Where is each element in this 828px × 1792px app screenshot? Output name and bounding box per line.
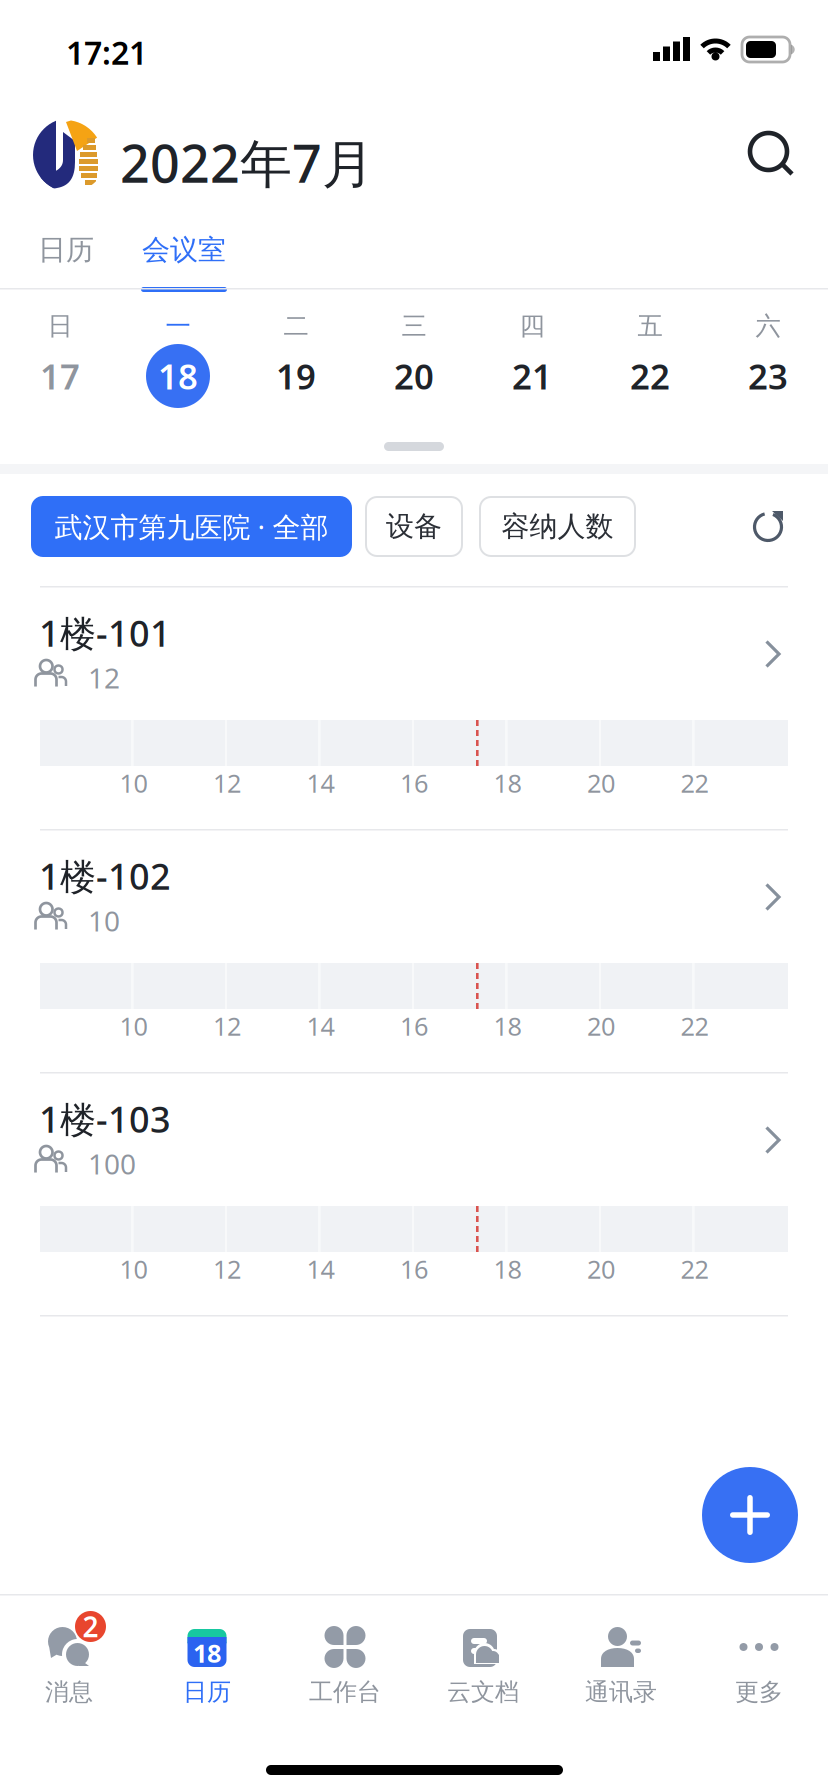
staticText: 一 [165, 310, 190, 341]
staticText: 14 [306, 766, 334, 800]
button[interactable]: 2 [0, 1596, 138, 1708]
staticText: 日历 [183, 1677, 231, 1707]
staticText: 18 [493, 1009, 521, 1043]
button[interactable]: 二 [237, 305, 355, 415]
button[interactable]: 18 [138, 1596, 276, 1708]
staticText: 12 [213, 766, 241, 800]
staticText: 2 [82, 1608, 98, 1645]
staticText: 20 [587, 766, 615, 800]
button[interactable]: 设备 [366, 497, 462, 556]
button[interactable]: 更多 [690, 1596, 828, 1708]
button[interactable]: 一 [119, 305, 237, 415]
staticText: 18 [493, 766, 521, 800]
staticText: 10 [119, 1252, 147, 1286]
staticText: 10 [88, 902, 120, 939]
staticText: 云文档 [447, 1677, 519, 1707]
button[interactable]: 通讯录 [552, 1596, 690, 1708]
staticText: 二 [283, 310, 308, 341]
staticText: 16 [400, 1009, 428, 1043]
staticText: 五 [637, 310, 662, 341]
staticText: 1楼-102 [39, 852, 171, 900]
staticText: 18 [493, 1252, 521, 1286]
staticText: 16 [400, 766, 428, 800]
button[interactable]: 会议室 [128, 230, 240, 294]
staticText: 22 [680, 1252, 708, 1286]
staticText: 工作台 [309, 1677, 381, 1707]
staticText: 22 [680, 1009, 708, 1043]
button[interactable]: 容纳人数 [480, 497, 635, 556]
staticText: 容纳人数 [501, 509, 613, 544]
button[interactable]: 五 [591, 305, 709, 415]
staticText: 23 [748, 353, 788, 399]
button[interactable]: Search [735, 120, 813, 190]
staticText: 20 [587, 1252, 615, 1286]
button[interactable]: 日历 [4, 230, 128, 294]
button[interactable]: Refresh [725, 490, 811, 562]
staticText: 10 [119, 1009, 147, 1043]
staticText: 日 [47, 310, 72, 341]
button[interactable]: Create [702, 1467, 798, 1563]
staticText: 20 [394, 353, 434, 399]
staticText: 14 [306, 1252, 334, 1286]
staticText: 2022年7月 [120, 128, 374, 197]
staticText: 12 [88, 659, 120, 696]
staticText: 19 [276, 353, 316, 399]
button[interactable]: 六 [709, 305, 827, 415]
button[interactable]: 1楼-103 [0, 1072, 828, 1315]
staticText: 18 [158, 353, 198, 399]
button[interactable]: 三 [355, 305, 473, 415]
button[interactable]: 1楼-102 [0, 829, 828, 1072]
staticText: 10 [119, 766, 147, 800]
staticText: 三 [401, 310, 426, 341]
staticText: 20 [587, 1009, 615, 1043]
staticText: 武汉市第九医院 · 全部 [54, 508, 328, 545]
staticText: 17:21 [66, 31, 147, 73]
staticText: 12 [213, 1252, 241, 1286]
button[interactable]: 四 [473, 305, 591, 415]
staticText: 更多 [735, 1677, 783, 1707]
staticText: 四 [519, 310, 544, 341]
staticText: 会议室 [142, 233, 226, 267]
staticText: 22 [630, 353, 670, 399]
staticText: 通讯录 [585, 1677, 657, 1707]
staticText: 22 [680, 766, 708, 800]
button[interactable]: 日 [1, 305, 119, 415]
staticText: 21 [512, 353, 552, 399]
staticText: 消息 [45, 1677, 93, 1707]
button[interactable]: 云文档 [414, 1596, 552, 1708]
staticText: 100 [88, 1145, 136, 1182]
staticText: 1楼-101 [39, 609, 171, 657]
button[interactable]: 1楼-101 [0, 586, 828, 829]
staticText: 设备 [386, 509, 442, 544]
staticText: 18 [193, 1636, 221, 1670]
button[interactable]: 武汉市第九医院 · 全部 [32, 497, 351, 556]
staticText: 16 [400, 1252, 428, 1286]
button[interactable]: 工作台 [276, 1596, 414, 1708]
staticText: 12 [213, 1009, 241, 1043]
staticText: 日历 [38, 233, 94, 267]
staticText: 1楼-103 [39, 1095, 171, 1143]
staticText: 14 [306, 1009, 334, 1043]
staticText: 17 [40, 353, 80, 399]
staticText: 六 [755, 310, 780, 341]
